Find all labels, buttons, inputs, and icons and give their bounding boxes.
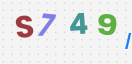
button[interactable]: Captcha code S7 49, tap to refresh [0, 0, 132, 64]
